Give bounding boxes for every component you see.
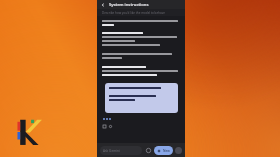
button[interactable]: New [154,146,173,155]
button[interactable] [105,83,178,113]
button[interactable]: Back [100,2,106,8]
staticText: New [163,149,170,153]
button[interactable]: More [108,124,112,128]
staticText: System instructions [109,2,149,8]
button[interactable]: Attach [144,146,152,154]
button[interactable]: Copy [102,124,106,128]
staticText: Describe how you'd like the model to beh… [102,11,165,15]
button[interactable]: Profile [175,147,182,154]
staticText: Ask Gemini [103,149,120,153]
button[interactable]: Ask Gemini [100,146,142,155]
